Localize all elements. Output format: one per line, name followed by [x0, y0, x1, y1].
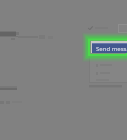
staticText: Send message	[96, 45, 127, 53]
button[interactable]: Options	[118, 24, 127, 33]
button[interactable]: Send message	[92, 43, 127, 53]
